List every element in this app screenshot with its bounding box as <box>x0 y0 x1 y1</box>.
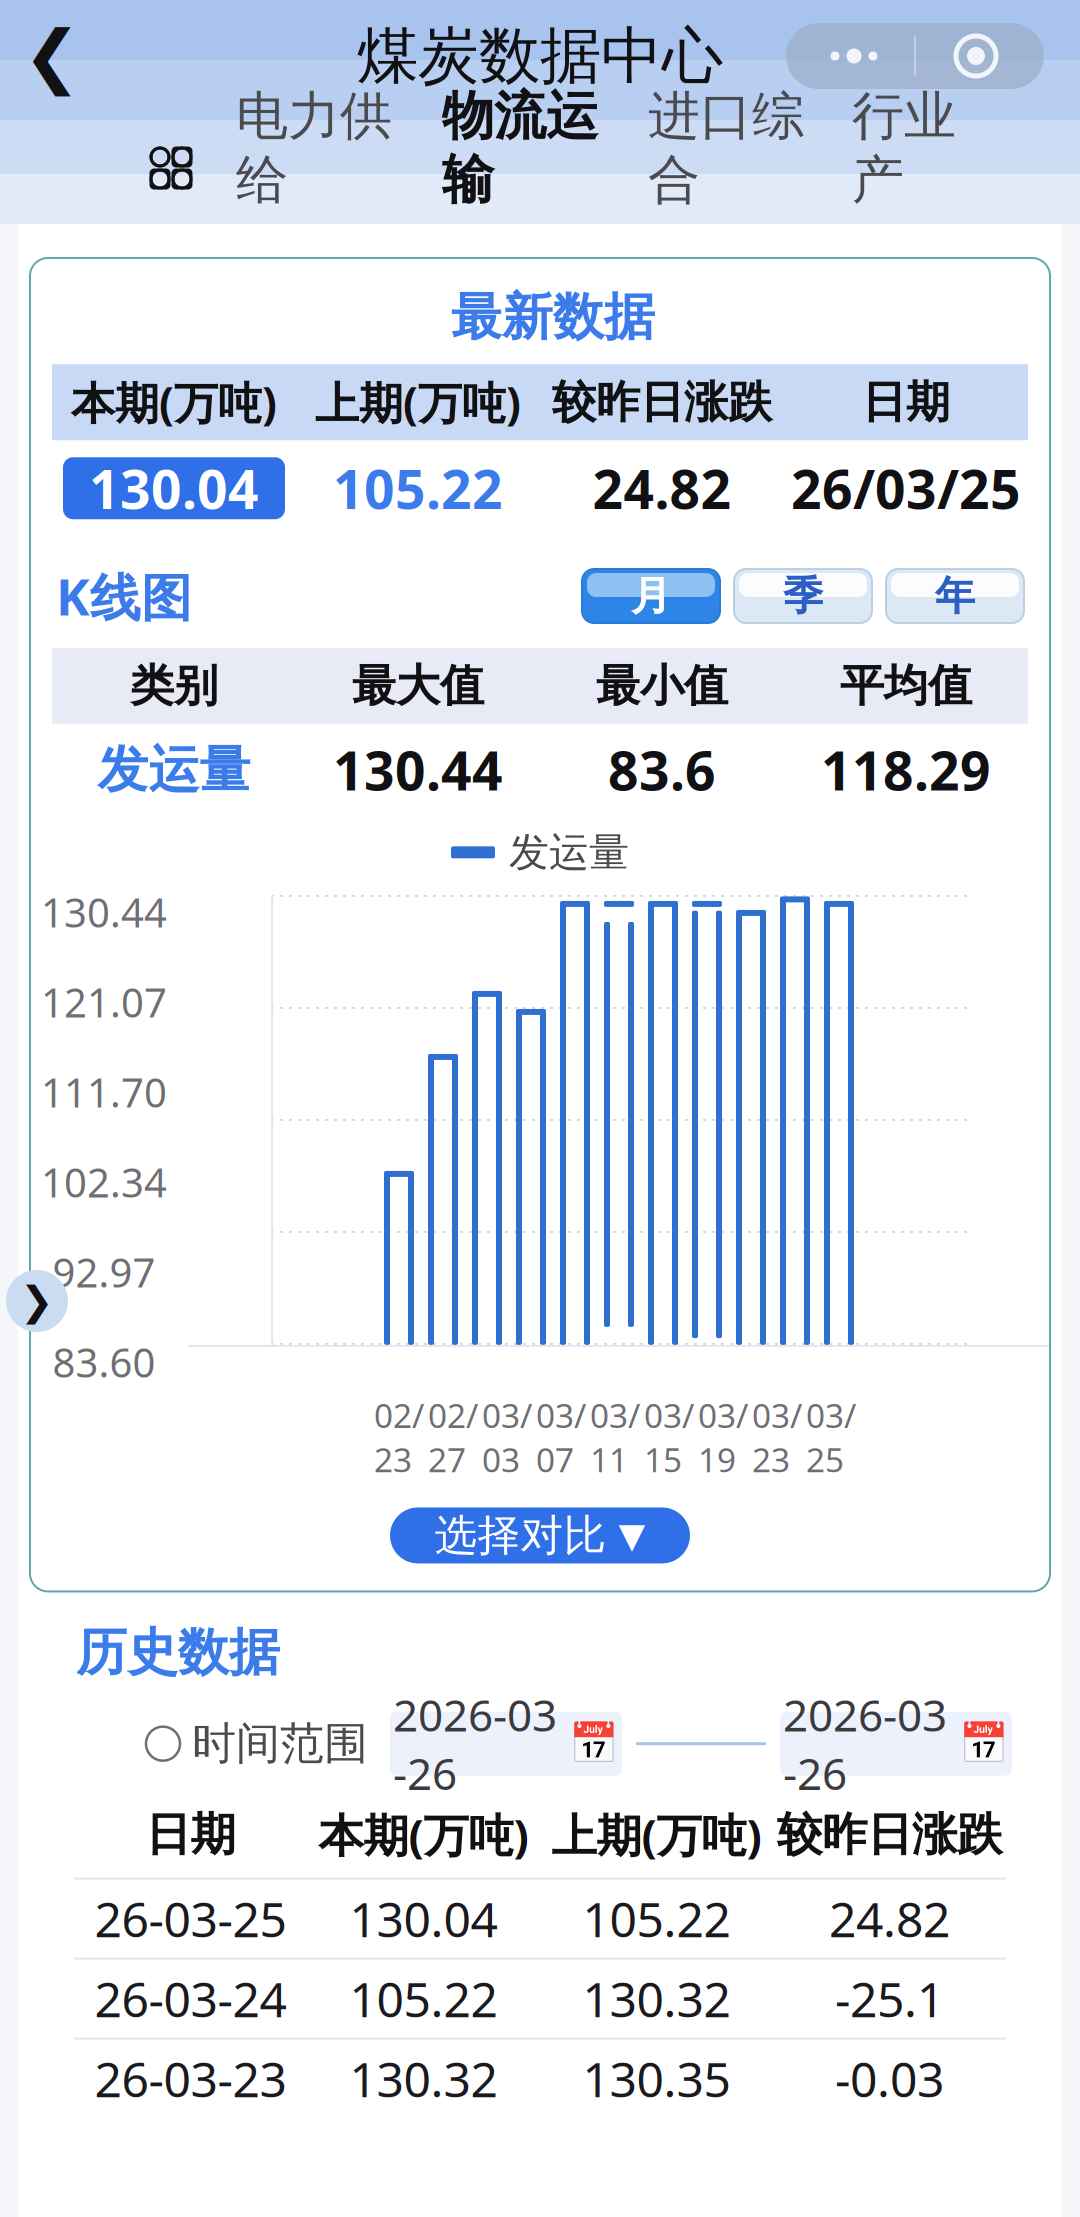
staticText: 24.82 <box>592 453 731 524</box>
staticText: 季 <box>783 571 823 620</box>
staticText: 进口综合 <box>648 84 804 212</box>
staticText: 选择对比 <box>434 1509 606 1562</box>
staticText: 最小值 <box>596 659 728 713</box>
staticText: 26-03-25 <box>94 1887 286 1950</box>
staticText: 105.22 <box>582 1887 730 1950</box>
button[interactable]: Categories <box>101 113 211 223</box>
staticText: 03/03 <box>482 1393 532 1481</box>
staticText: 较昨日涨跌 <box>777 1807 1002 1862</box>
staticText: 83.6 <box>608 734 716 805</box>
staticText: 上期(万吨) <box>551 1805 761 1865</box>
button[interactable]: 行业产 <box>829 112 979 224</box>
staticText: 本期(万吨) <box>71 373 277 431</box>
button[interactable]: 电力供给 <box>211 112 417 224</box>
staticText: 102.34 <box>41 1155 167 1208</box>
staticText: 季 <box>783 571 823 620</box>
staticText: 130.35 <box>582 2047 730 2110</box>
staticText: 上期(万吨) <box>315 373 521 431</box>
staticText: 年 <box>935 571 975 620</box>
staticText: 物流运输 <box>442 84 598 212</box>
staticText: 最新数据 <box>451 286 655 348</box>
staticText: 月 <box>631 571 671 620</box>
staticText: -25.1 <box>835 1967 944 2030</box>
staticText: 111.70 <box>41 1065 167 1118</box>
staticText: 130.44 <box>333 734 503 805</box>
staticText: 130.04 <box>89 453 259 524</box>
staticText: K线图 <box>56 562 192 630</box>
button[interactable]: More <box>794 23 914 89</box>
button[interactable]: Back <box>0 4 104 108</box>
staticText: 130.32 <box>582 1967 730 2030</box>
button[interactable]: 选择对比 <box>390 1507 690 1563</box>
staticText: 24.82 <box>829 1887 950 1950</box>
staticText: 发运量 <box>509 828 629 877</box>
button[interactable]: Close <box>916 23 1036 89</box>
staticText: 📅 <box>569 1721 619 1766</box>
staticText: 2026-03-26 <box>393 1685 557 1802</box>
staticText: 2026-03-26 <box>783 1685 947 1802</box>
button[interactable]: 年 <box>886 569 1024 623</box>
button[interactable]: 季 <box>734 569 872 623</box>
button[interactable]: 2026-03-26 <box>780 1712 1012 1776</box>
staticText: 行业产 <box>852 84 956 212</box>
staticText: 类别 <box>130 659 218 713</box>
staticText: 26-03-24 <box>94 1967 286 2030</box>
staticText: 130.04 <box>349 1887 497 1950</box>
staticText: 26/03/25 <box>791 453 1021 524</box>
button[interactable]: 月 <box>582 569 720 623</box>
staticText: 历史数据 <box>76 1621 280 1684</box>
staticText: 105.22 <box>349 1967 497 2030</box>
staticText: 02/27 <box>428 1393 478 1481</box>
staticText: 平均值 <box>840 659 972 713</box>
staticText: 发运量 <box>97 739 250 801</box>
staticText: 03/23 <box>752 1393 802 1481</box>
staticText: ▼ <box>618 1516 645 1555</box>
staticText: 130.32 <box>349 2047 497 2110</box>
staticText: 月 <box>631 571 671 620</box>
staticText: 03/19 <box>698 1393 748 1481</box>
staticText: 煤炭数据中心 <box>357 18 723 94</box>
staticText: 02/23 <box>374 1393 424 1481</box>
button[interactable]: 进口综合 <box>623 112 829 224</box>
staticText: 83.60 <box>52 1335 155 1388</box>
staticText: 118.29 <box>821 734 991 805</box>
staticText: 📅 <box>959 1721 1009 1766</box>
staticText: 最大值 <box>352 659 484 713</box>
staticText: 105.22 <box>333 453 503 524</box>
button[interactable]: 物流运输 <box>417 112 623 224</box>
staticText: 时间范围 <box>192 1717 368 1771</box>
button[interactable]: Next panel <box>6 1270 68 1332</box>
staticText: 130.44 <box>41 885 167 938</box>
staticText: 03/11 <box>590 1393 640 1481</box>
staticText: 较昨日涨跌 <box>552 375 772 429</box>
staticText: 26-03-23 <box>94 2047 286 2110</box>
staticText: 121.07 <box>41 975 167 1028</box>
staticText: 03/07 <box>536 1393 586 1481</box>
staticText: 03/25 <box>806 1393 856 1481</box>
staticText: -0.03 <box>835 2047 944 2110</box>
staticText: 日期 <box>862 375 950 429</box>
staticText: 本期(万吨) <box>318 1805 528 1865</box>
staticText: 03/15 <box>644 1393 694 1481</box>
staticText: 电力供给 <box>236 84 392 212</box>
staticText: ❯ <box>20 1278 54 1324</box>
staticText: ❮ <box>23 17 81 95</box>
staticText: 日期 <box>145 1807 235 1862</box>
button[interactable]: 2026-03-26 <box>390 1712 622 1776</box>
staticText: 92.97 <box>52 1245 155 1298</box>
staticText: 年 <box>935 571 975 620</box>
